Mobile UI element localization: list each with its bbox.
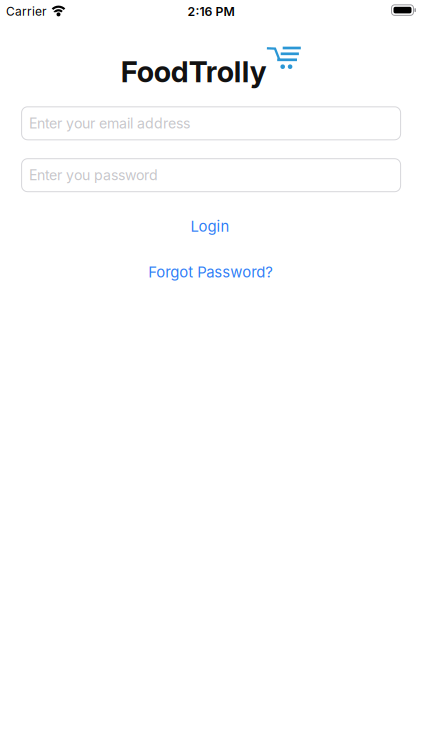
staticText: Enter you password (29, 167, 158, 183)
staticText: Login (191, 218, 230, 235)
button[interactable]: Enter your email address (22, 107, 401, 140)
button[interactable]: Enter you password (22, 159, 401, 192)
staticText: 2:16 PM (187, 4, 234, 19)
staticText: Carrier (6, 4, 47, 18)
staticText: Forgot Password? (148, 263, 273, 281)
button[interactable]: Login (191, 218, 230, 235)
staticText: FoodTrolly (121, 55, 267, 89)
button[interactable]: Forgot Password? (148, 263, 273, 281)
staticText: Enter your email address (29, 115, 190, 131)
